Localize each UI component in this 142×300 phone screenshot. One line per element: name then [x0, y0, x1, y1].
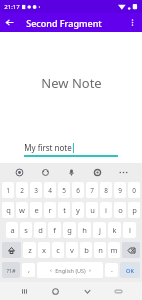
staticText: Second Fragment: [26, 17, 102, 29]
staticText: h: [82, 225, 87, 235]
button[interactable]: k: [108, 222, 121, 238]
staticText: s: [24, 225, 28, 235]
button[interactable]: c: [52, 242, 64, 258]
button[interactable]: 2: [16, 182, 28, 198]
staticText: g: [67, 225, 72, 235]
button[interactable]: o: [114, 202, 126, 218]
staticText: x: [42, 245, 46, 255]
staticText: f: [53, 225, 56, 235]
staticText: z: [28, 245, 32, 255]
button[interactable]: z: [23, 242, 36, 258]
staticText: t: [63, 205, 66, 215]
staticText: b: [84, 245, 89, 255]
button[interactable]: a: [6, 222, 18, 238]
button[interactable]: 0: [128, 182, 140, 198]
staticText: e: [34, 205, 39, 215]
button[interactable]: n: [94, 242, 106, 258]
staticText: 21:17: [4, 3, 20, 11]
staticText: 3: [34, 186, 38, 195]
staticText: j: [99, 225, 101, 235]
staticText: ?1#: [6, 267, 16, 274]
button[interactable]: w: [16, 202, 28, 218]
staticText: 9: [118, 186, 122, 195]
staticText: 6: [76, 186, 80, 195]
staticText: New Note: [41, 74, 102, 92]
button[interactable]: e: [30, 202, 42, 218]
button[interactable]: t: [58, 202, 70, 218]
button[interactable]: Google search: [12, 165, 26, 179]
staticText: y: [76, 205, 80, 215]
button[interactable]: Close keyboard: [79, 283, 95, 299]
staticText: 0: [132, 186, 136, 195]
button[interactable]: OK: [120, 262, 140, 278]
button[interactable]: 4: [44, 182, 56, 198]
staticText: o: [118, 205, 123, 215]
button[interactable]: l: [123, 222, 136, 238]
staticText: w: [19, 205, 25, 215]
button[interactable]: Home: [47, 283, 63, 299]
button[interactable]: 8: [100, 182, 112, 198]
button[interactable]: Keyboard settings: [90, 165, 104, 179]
button[interactable]: 7: [86, 182, 98, 198]
button[interactable]: d: [34, 222, 46, 238]
button[interactable]: More options: [123, 13, 142, 32]
button[interactable]: Switch keyboard: [110, 283, 126, 299]
staticText: ‹: [50, 266, 52, 274]
button[interactable]: r: [44, 202, 56, 218]
button[interactable]: s: [20, 222, 32, 238]
button[interactable]: y: [72, 202, 84, 218]
staticText: a: [10, 225, 15, 235]
staticText: 5: [62, 186, 66, 195]
staticText: ,: [28, 265, 30, 275]
button[interactable]: q: [2, 202, 14, 218]
button[interactable]: 9: [114, 182, 126, 198]
button[interactable]: f: [48, 222, 61, 238]
staticText: My first note: [24, 142, 72, 153]
button[interactable]: x: [38, 242, 50, 258]
button[interactable]: 5: [58, 182, 70, 198]
button[interactable]: p: [128, 202, 140, 218]
button[interactable]: 3: [30, 182, 42, 198]
button[interactable]: i: [100, 202, 112, 218]
staticText: ›: [89, 266, 91, 274]
staticText: 2: [20, 186, 24, 195]
button[interactable]: ,: [22, 263, 35, 277]
button[interactable]: ?1#: [2, 262, 20, 278]
button[interactable]: Navigate up: [0, 13, 19, 32]
staticText: i: [105, 205, 107, 215]
staticText: 1: [6, 186, 10, 195]
button[interactable]: j: [93, 222, 106, 238]
staticText: OK: [126, 267, 134, 274]
staticText: 7: [90, 186, 94, 195]
button[interactable]: Delete: [122, 242, 140, 258]
button[interactable]: g: [63, 222, 76, 238]
staticText: p: [132, 205, 137, 215]
staticText: r: [48, 205, 52, 215]
button[interactable]: b: [80, 242, 92, 258]
button[interactable]: My first note: [24, 142, 118, 157]
button[interactable]: Recent apps: [16, 283, 32, 299]
button[interactable]: 6: [72, 182, 84, 198]
staticText: u: [90, 205, 95, 215]
button[interactable]: Shift: [2, 242, 21, 258]
button[interactable]: ‹: [37, 262, 103, 278]
staticText: .: [111, 265, 113, 275]
button[interactable]: m: [108, 242, 120, 258]
button[interactable]: Stickers: [38, 165, 52, 179]
staticText: m: [110, 245, 118, 255]
staticText: k: [112, 225, 117, 235]
staticText: English (US): [55, 267, 86, 274]
staticText: c: [56, 245, 60, 255]
button[interactable]: u: [86, 202, 98, 218]
staticText: 8: [104, 186, 108, 195]
button[interactable]: v: [66, 242, 78, 258]
button[interactable]: Voice input: [64, 165, 78, 179]
button[interactable]: More keyboard options: [116, 165, 130, 179]
button[interactable]: h: [78, 222, 91, 238]
staticText: 4: [48, 186, 52, 195]
staticText: l: [129, 225, 131, 235]
button[interactable]: .: [105, 263, 118, 277]
staticText: n: [98, 245, 103, 255]
staticText: v: [70, 245, 74, 255]
button[interactable]: 1: [2, 182, 14, 198]
